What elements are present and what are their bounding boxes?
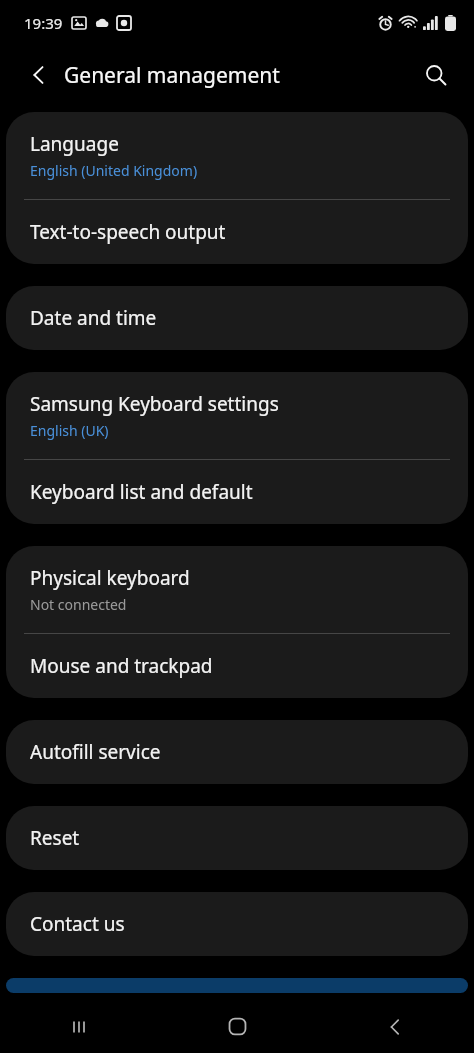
button[interactable]: Text-to-speech output [6, 200, 468, 264]
staticText: English (United Kingdom) [30, 161, 198, 180]
button[interactable]: Physical keyboard [6, 546, 468, 633]
staticText: Autofill service [30, 739, 161, 765]
staticText: Mouse and trackpad [30, 653, 213, 679]
button[interactable]: Date and time [6, 286, 468, 350]
staticText: Language [30, 131, 119, 157]
button[interactable]: Mouse and trackpad [6, 634, 468, 698]
button[interactable]: Language [6, 112, 468, 199]
button[interactable]: Home [158, 1000, 316, 1053]
staticText: General management [64, 61, 280, 90]
staticText: Not connected [30, 595, 127, 614]
button[interactable]: Autofill service [6, 720, 468, 784]
button[interactable] [6, 978, 468, 993]
staticText: Text-to-speech output [30, 219, 226, 245]
button[interactable]: Search [414, 53, 458, 97]
staticText: 19:39 [24, 13, 63, 33]
staticText: Contact us [30, 911, 125, 937]
staticText: English (UK) [30, 421, 109, 440]
button[interactable]: Back [18, 54, 60, 96]
staticText: Physical keyboard [30, 565, 190, 591]
button[interactable]: Reset [6, 806, 468, 870]
button[interactable]: Recent apps [0, 1000, 158, 1053]
button[interactable]: Back [316, 1000, 474, 1053]
staticText: Keyboard list and default [30, 479, 253, 505]
button[interactable]: Keyboard list and default [6, 460, 468, 524]
button[interactable]: Samsung Keyboard settings [6, 372, 468, 459]
staticText: Date and time [30, 305, 157, 331]
staticText: Reset [30, 825, 80, 851]
button[interactable]: Contact us [6, 892, 468, 956]
staticText: Samsung Keyboard settings [30, 391, 279, 417]
